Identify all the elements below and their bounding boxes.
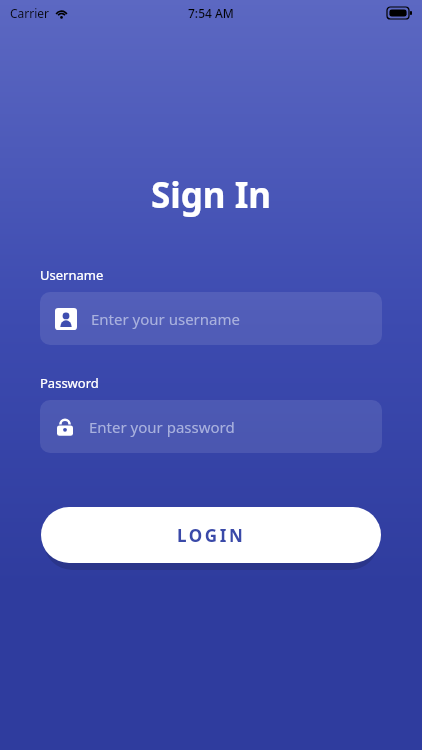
staticText: Carrier (10, 5, 50, 21)
staticText: 7:54 AM (188, 5, 234, 21)
staticText: Enter your password (89, 417, 235, 437)
staticText: Password (40, 374, 99, 392)
staticText: Username (40, 266, 104, 284)
staticText: Enter your username (91, 309, 240, 329)
button[interactable]: Enter your username (40, 292, 382, 345)
button[interactable]: LOGIN (41, 507, 381, 563)
staticText: LOGIN (177, 524, 246, 547)
staticText: Sign In (0, 171, 422, 219)
button[interactable]: Enter your password (40, 400, 382, 453)
